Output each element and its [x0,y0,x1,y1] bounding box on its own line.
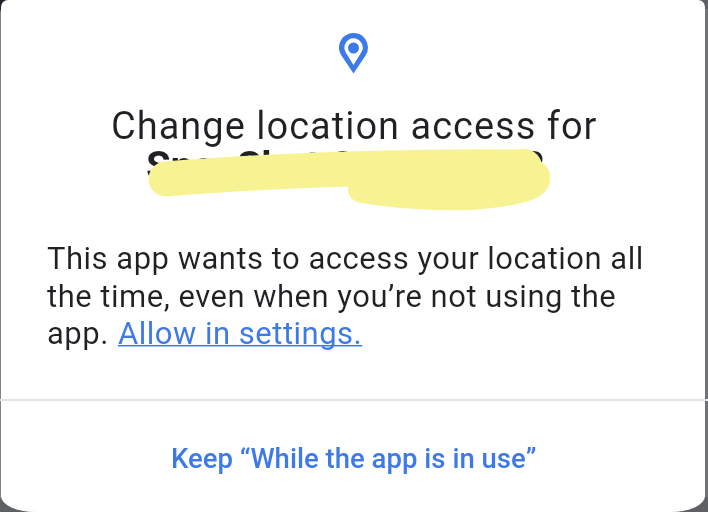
staticText: the time, even when you’re not using the [47,278,617,314]
button[interactable]: Allow in settings. [118,315,363,351]
staticText: Keep “While the app is in use” [171,442,537,474]
staticText: This app wants to access your location a… [47,240,644,276]
staticText: Change location access for [111,104,598,149]
staticText: SnapShot SmartCam2 [146,143,546,190]
staticText: app. [47,315,118,351]
button[interactable]: Keep “While the app is in use” [0,423,708,493]
